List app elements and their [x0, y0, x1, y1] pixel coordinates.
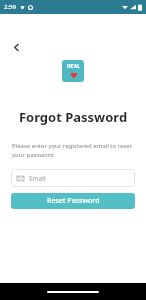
staticText: Reset Password — [47, 196, 100, 206]
staticText: Please enter your registered email to re… — [12, 142, 134, 159]
button[interactable]: Back — [7, 38, 25, 56]
button[interactable]: Email — [11, 169, 135, 187]
staticText: Email — [29, 174, 46, 183]
button[interactable]: Reset Password — [11, 193, 135, 209]
staticText: Forgot Password — [0, 108, 146, 126]
staticText: 2:59 — [4, 3, 16, 11]
staticText: HEAL — [67, 63, 80, 70]
